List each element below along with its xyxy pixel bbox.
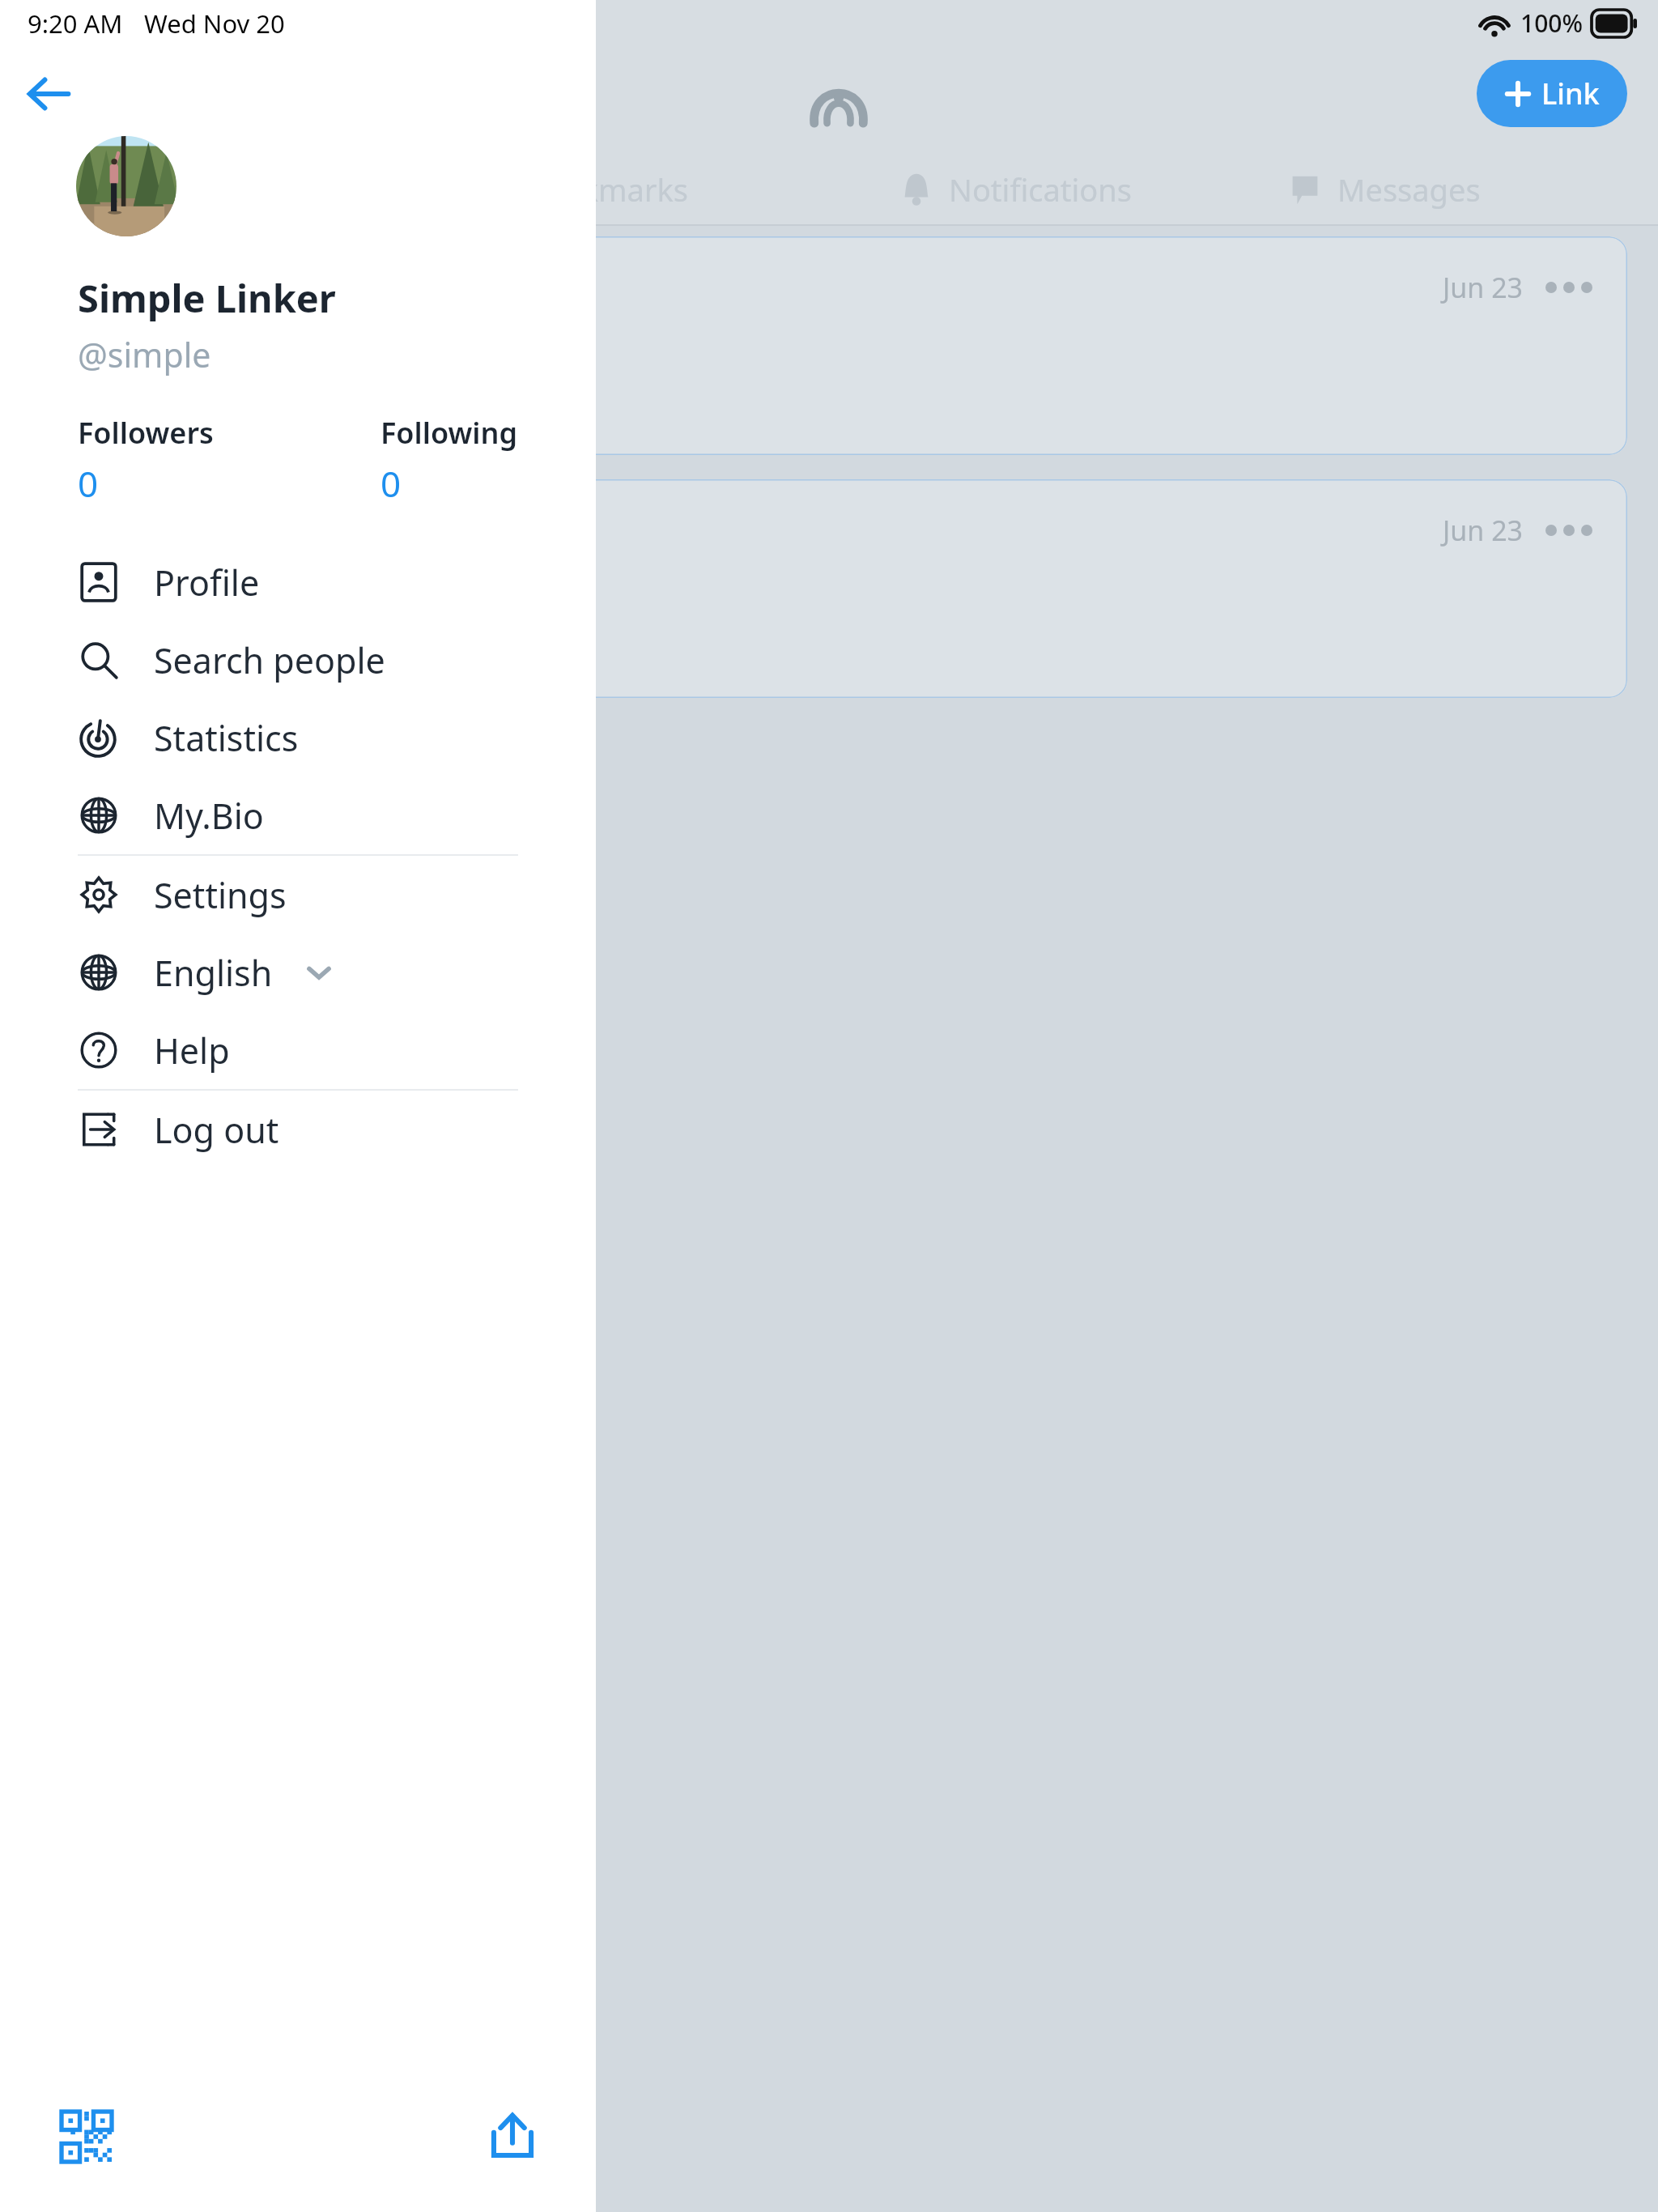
button[interactable]: QR code bbox=[50, 2100, 123, 2173]
staticText: 9:20 AM bbox=[28, 6, 123, 40]
staticText: Simple Linker bbox=[78, 272, 336, 324]
staticText: Followers bbox=[78, 413, 214, 453]
button[interactable]: Jun 23 bbox=[421, 236, 1627, 455]
button[interactable]: Following bbox=[380, 413, 525, 508]
button[interactable]: Help bbox=[0, 1011, 596, 1089]
staticText: Messages bbox=[1337, 168, 1481, 211]
staticText: Wed Nov 20 bbox=[144, 6, 285, 40]
staticText: Bookmarks bbox=[525, 168, 689, 211]
button[interactable]: Bookmarks bbox=[518, 159, 695, 220]
button[interactable]: Settings bbox=[0, 856, 596, 934]
staticText: @simple bbox=[78, 332, 211, 377]
button[interactable]: Jun 23 bbox=[421, 479, 1627, 698]
staticText: Log out bbox=[154, 1106, 279, 1154]
button[interactable]: Log out bbox=[0, 1091, 596, 1168]
staticText: Link bbox=[1541, 74, 1600, 113]
button[interactable]: My.Bio bbox=[0, 776, 596, 854]
button[interactable]: Notifications bbox=[891, 159, 1139, 220]
staticText: 0 bbox=[78, 459, 99, 508]
staticText: Search people bbox=[154, 636, 385, 684]
staticText: 0 bbox=[380, 459, 402, 508]
staticText: Jun 23 bbox=[1443, 269, 1524, 306]
staticText: Notifications bbox=[949, 168, 1133, 211]
button[interactable]: Followers bbox=[78, 413, 220, 508]
staticText: Jun 23 bbox=[1443, 512, 1524, 549]
staticText: English bbox=[154, 949, 273, 997]
staticText: 100% bbox=[1520, 6, 1584, 40]
staticText: Following bbox=[380, 413, 518, 453]
staticText: Settings bbox=[154, 871, 287, 919]
button[interactable]: Profile bbox=[0, 543, 596, 621]
button[interactable]: Search people bbox=[0, 621, 596, 699]
staticText: Help bbox=[154, 1027, 230, 1074]
button[interactable]: Profile photo bbox=[76, 136, 176, 236]
button[interactable]: English bbox=[0, 934, 596, 1011]
staticText: Profile bbox=[154, 559, 260, 606]
staticText: My.Bio bbox=[154, 792, 264, 840]
button[interactable]: Statistics bbox=[0, 699, 596, 776]
button[interactable]: Share bbox=[476, 2100, 549, 2173]
button[interactable]: Link bbox=[1477, 60, 1627, 127]
staticText: Statistics bbox=[154, 714, 299, 762]
button[interactable]: Messages bbox=[1279, 159, 1487, 220]
button[interactable]: Back bbox=[18, 63, 79, 125]
